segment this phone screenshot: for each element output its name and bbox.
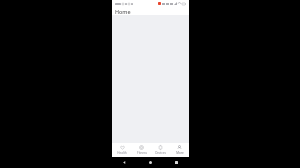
other: Fitness — [139, 145, 144, 150]
staticText: Fitness — [137, 151, 147, 155]
staticText: Devices — [155, 151, 166, 155]
button[interactable]: Home — [137, 157, 163, 168]
other: More — [177, 145, 182, 150]
button[interactable]: Health — [112, 143, 132, 157]
staticText: Home — [115, 8, 131, 15]
staticText: More — [176, 151, 184, 155]
button[interactable]: More — [170, 143, 189, 157]
button[interactable]: Fitness — [132, 143, 151, 157]
other: Health — [120, 145, 125, 150]
other: Devices — [158, 145, 163, 150]
staticText: Health — [117, 151, 127, 155]
button[interactable]: Back — [112, 157, 137, 168]
button[interactable]: Devices — [151, 143, 170, 157]
button[interactable]: Recents — [163, 157, 189, 168]
